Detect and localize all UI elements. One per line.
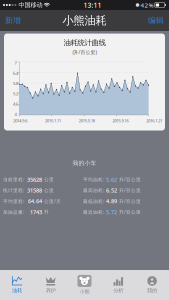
staticText: 2015.5.18 — [79, 118, 95, 123]
staticText: 编辑 — [148, 16, 164, 25]
staticText: 升/百公里 — [119, 198, 141, 204]
staticText: 2015.1.11 — [45, 118, 61, 123]
button[interactable]: 我的 — [135, 270, 169, 300]
staticText: 升/百公里 — [119, 209, 141, 215]
staticText: 加油总量: — [3, 209, 24, 215]
staticText: 最高油耗: — [83, 187, 104, 194]
staticText: 油耗 — [12, 287, 22, 294]
staticText: 4.89 — [106, 197, 117, 205]
staticText: 中国移动 — [18, 1, 42, 9]
staticText: 6.4 — [13, 70, 18, 76]
staticText: 31588 — [27, 187, 42, 194]
staticText: 分析 — [113, 287, 123, 294]
staticText: 1743 — [30, 208, 42, 216]
staticText: 64.64 — [28, 197, 42, 205]
staticText: 5.72 — [106, 208, 117, 216]
button[interactable]: 编辑 — [144, 11, 168, 30]
staticText: 6.52 — [106, 187, 117, 194]
staticText: 小熊油耗 — [62, 13, 106, 27]
staticText: 平均油耗: — [83, 176, 104, 183]
staticText: 13:11 — [84, 0, 102, 10]
staticText: 我的小车 — [72, 159, 96, 167]
button[interactable]: 油耗 — [0, 270, 34, 300]
staticText: 7 — [14, 60, 16, 66]
staticText: (升/百公里) — [72, 49, 96, 55]
button[interactable]: 新增 — [1, 11, 25, 30]
staticText: 5.8 — [13, 80, 18, 86]
staticText: 5.62 — [106, 176, 117, 183]
staticText: 我的 — [147, 287, 157, 294]
staticText: 油耗统计曲线 — [63, 38, 105, 47]
button[interactable]: 分析 — [101, 270, 135, 300]
staticText: 升/百公里 — [119, 187, 141, 194]
staticText: 4.6 — [13, 101, 18, 107]
staticText: 统计里程: — [3, 187, 24, 194]
staticText: 2014.9.6 — [13, 118, 27, 123]
staticText: 42% — [140, 1, 153, 9]
staticText: 升/百公里 — [119, 176, 141, 183]
button[interactable]: 养护 — [34, 270, 68, 300]
staticText: 升 — [44, 209, 49, 215]
staticText: 小熊 — [79, 288, 89, 295]
staticText: 公里/天 — [44, 198, 61, 204]
staticText: 最低油耗: — [83, 198, 104, 204]
staticText: 当前里程: — [3, 176, 24, 183]
staticText: 最近油耗: — [83, 209, 104, 215]
staticText: 4 — [14, 111, 16, 117]
staticText: 养护 — [46, 287, 56, 294]
staticText: 平均里程: — [3, 198, 24, 204]
staticText: 新增 — [5, 16, 21, 25]
button[interactable]: 小熊 — [68, 270, 101, 300]
staticText: 5.2 — [13, 91, 18, 96]
staticText: 公里 — [44, 177, 54, 182]
staticText: 35628 — [27, 176, 42, 183]
staticText: 公里 — [44, 187, 54, 193]
staticText: 2015.9.16 — [112, 118, 128, 123]
staticText: 2016.1.21 — [146, 118, 162, 123]
